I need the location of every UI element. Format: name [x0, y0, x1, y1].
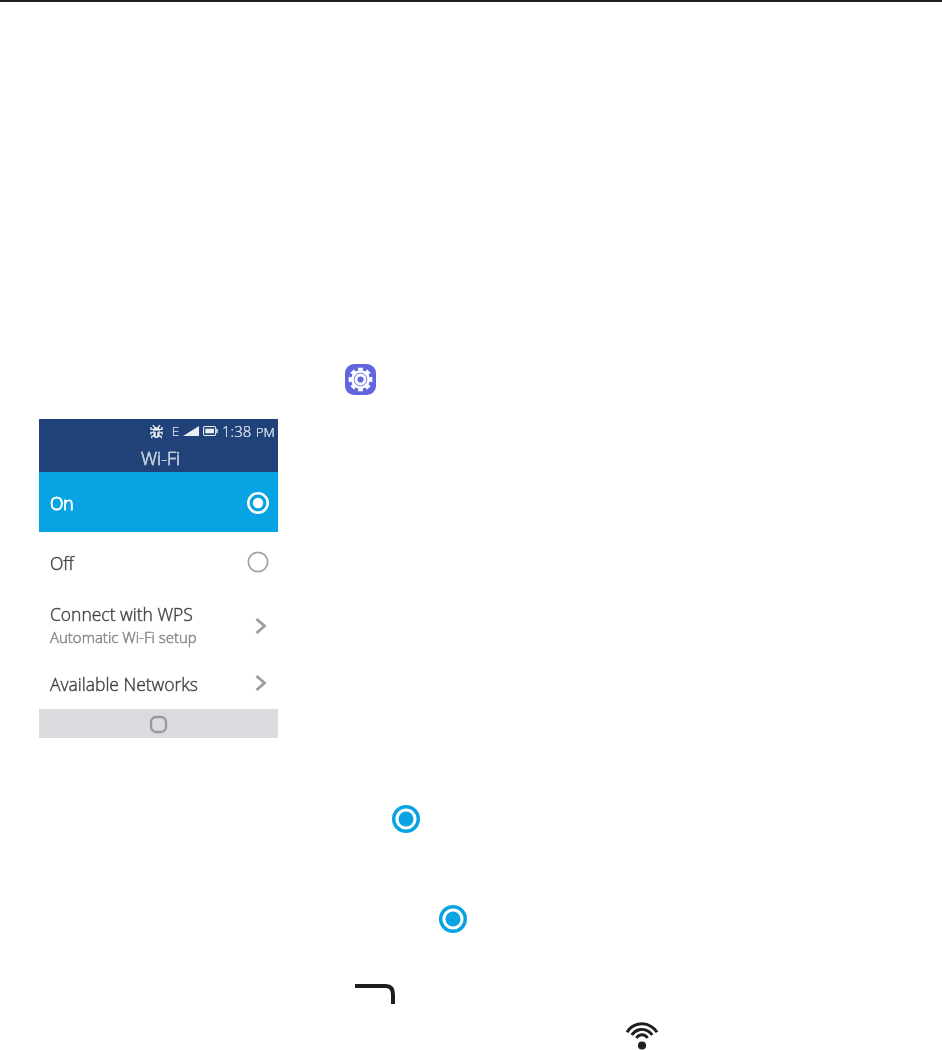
staticText: Connect with WPS: [50, 602, 193, 626]
staticText: Automatic Wi-Fi setup: [50, 627, 197, 647]
button[interactable]: Settings: [345, 364, 376, 395]
staticText: Available Networks: [50, 672, 198, 696]
other: Wi-Fi: [626, 1021, 658, 1050]
staticText: Available Networks: [50, 672, 198, 696]
staticText: On: [50, 491, 74, 515]
staticText: Automatic Wi-Fi setup: [50, 627, 197, 647]
staticText: Wi-Fi: [141, 446, 181, 471]
staticText: E: [172, 422, 180, 440]
staticText: Off: [50, 551, 74, 575]
staticText: Off: [50, 551, 74, 575]
button[interactable]: Connect with WPS: [39, 591, 278, 652]
staticText: Wi-Fi: [141, 446, 181, 471]
staticText: On: [50, 491, 74, 515]
button[interactable]: Off: [39, 532, 278, 591]
button[interactable]: Available Networks: [39, 652, 278, 709]
button[interactable]: Home: [151, 717, 166, 732]
button[interactable]: On: [39, 472, 278, 532]
staticText: PM: [256, 423, 275, 441]
staticText: Connect with WPS: [50, 602, 193, 626]
staticText: 1:38: [222, 421, 252, 441]
